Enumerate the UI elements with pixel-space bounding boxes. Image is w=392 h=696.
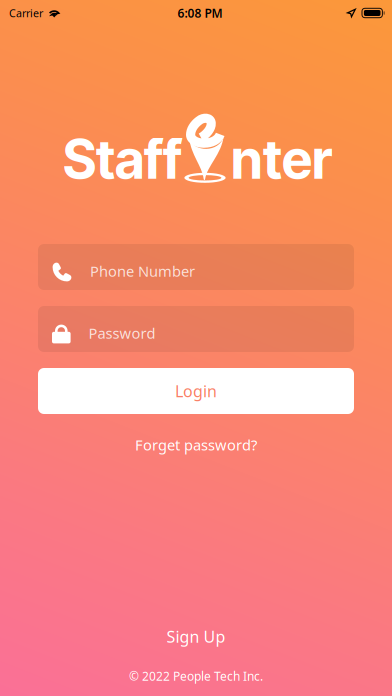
staticText: Forget password? [135,435,257,454]
staticText: Password [89,323,156,343]
staticText: Staff [63,127,182,191]
staticText: Login [175,380,217,402]
staticText: Sign Up [166,626,225,647]
staticText: © 2022 People Tech Inc. [129,668,263,684]
staticText: 6:08 PM [177,5,222,21]
staticText: nter [231,127,332,191]
button[interactable]: Sign Up [148,619,243,654]
staticText: Carrier [9,6,43,20]
staticText: Phone Number [90,261,195,281]
button[interactable]: Forget password? [123,430,269,459]
button[interactable]: Login [38,368,354,414]
